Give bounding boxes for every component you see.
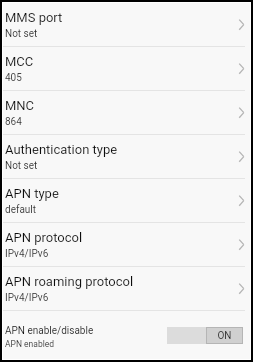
staticText: Not set [5, 28, 38, 40]
staticText: IPv4/IPv6 [5, 248, 49, 260]
button[interactable]: APN roaming protocol [3, 267, 250, 310]
staticText: Not set [5, 160, 38, 172]
other: Open APN roaming protocol [231, 281, 247, 297]
staticText: APN type [5, 186, 59, 201]
button[interactable]: MCC [3, 47, 250, 90]
other: Open APN protocol [231, 237, 247, 253]
staticText: IPv4/IPv6 [5, 292, 49, 304]
button[interactable]: APN protocol [3, 223, 250, 266]
staticText: APN enable/disable [5, 325, 94, 337]
staticText: 864 [5, 116, 22, 128]
staticText: MCC [5, 54, 34, 69]
other: Open APN type [231, 193, 247, 209]
other: Open MMS port [231, 17, 247, 33]
staticText: MNC [5, 98, 35, 113]
other: Open MNC [231, 105, 247, 121]
other: Open MCC [231, 61, 247, 77]
button[interactable]: MMS port [3, 3, 250, 46]
staticText: APN enabled [5, 339, 55, 349]
button[interactable]: ON [167, 327, 243, 344]
staticText: APN protocol [5, 230, 83, 245]
button[interactable]: Authentication type [3, 135, 250, 178]
staticText: APN roaming protocol [5, 274, 134, 289]
button[interactable]: APN enable/disable [3, 311, 250, 359]
staticText: ON [217, 330, 232, 342]
button[interactable]: MNC [3, 91, 250, 134]
button[interactable]: APN type [3, 179, 250, 222]
staticText: MMS port [5, 10, 63, 25]
staticText: default [5, 204, 37, 216]
staticText: 405 [5, 72, 22, 84]
other: Open Authentication type [231, 149, 247, 165]
staticText: Authentication type [5, 142, 118, 157]
